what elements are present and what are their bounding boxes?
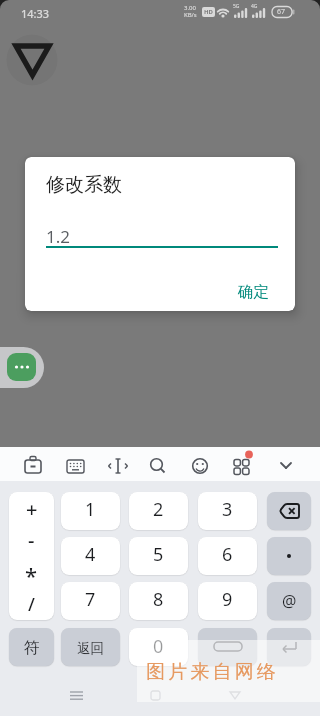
button[interactable]: [186, 450, 214, 478]
staticText: 4: [85, 542, 96, 567]
staticText: +: [26, 496, 38, 523]
button[interactable]: [267, 628, 311, 666]
button[interactable]: 3: [198, 492, 257, 530]
staticText: 14:33: [21, 6, 50, 21]
staticText: 1: [85, 497, 96, 522]
button[interactable]: [267, 537, 311, 575]
staticText: 1.2: [46, 225, 71, 248]
staticText: KB/s: [184, 11, 197, 19]
staticText: *: [25, 560, 38, 590]
staticText: 5G: [233, 3, 240, 10]
button[interactable]: [19, 450, 47, 478]
button[interactable]: [61, 450, 89, 478]
button[interactable]: 0: [129, 628, 188, 666]
button[interactable]: 返回: [61, 628, 120, 666]
staticText: /: [28, 592, 35, 617]
staticText: 3: [222, 497, 233, 522]
button[interactable]: 7: [61, 582, 120, 620]
button[interactable]: 5: [129, 537, 188, 575]
button[interactable]: 2: [129, 492, 188, 530]
button[interactable]: 9: [198, 582, 257, 620]
staticText: 3.00: [184, 4, 196, 12]
staticText: 5: [153, 542, 164, 567]
staticText: 6: [222, 542, 233, 567]
button[interactable]: 符: [9, 628, 54, 666]
staticText: 0: [153, 634, 164, 659]
staticText: 图片来自网络: [146, 660, 280, 684]
staticText: @: [282, 590, 297, 612]
button[interactable]: @: [267, 582, 311, 620]
staticText: 2: [153, 497, 164, 522]
button[interactable]: [227, 450, 255, 478]
staticText: 符: [24, 638, 40, 658]
staticText: 8: [153, 587, 164, 612]
staticText: 9: [222, 587, 233, 612]
button[interactable]: 确定: [223, 276, 283, 308]
button[interactable]: [198, 628, 257, 666]
staticText: -: [28, 526, 35, 553]
staticText: 确定: [238, 282, 269, 302]
staticText: 7: [85, 587, 96, 612]
button[interactable]: [7, 353, 36, 381]
button[interactable]: +: [9, 492, 54, 620]
button[interactable]: [272, 450, 300, 478]
button[interactable]: 6: [198, 537, 257, 575]
staticText: 修改系数: [46, 173, 122, 197]
button[interactable]: 4: [61, 537, 120, 575]
button[interactable]: [104, 450, 132, 478]
staticText: 67: [277, 7, 286, 17]
button[interactable]: 1: [61, 492, 120, 530]
button[interactable]: 8: [129, 582, 188, 620]
staticText: 4G: [251, 3, 258, 10]
staticText: HD: [204, 8, 213, 16]
button[interactable]: [144, 450, 172, 478]
button[interactable]: [267, 492, 311, 530]
staticText: 返回: [77, 640, 104, 657]
